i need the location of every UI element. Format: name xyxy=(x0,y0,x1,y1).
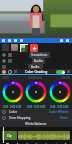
staticText: 0.00 xyxy=(16,105,22,109)
button[interactable]: Option xyxy=(66,39,69,42)
button[interactable]: Next frame xyxy=(43,143,49,144)
button[interactable]: Tool xyxy=(2,39,5,42)
button[interactable]: Undo xyxy=(4,143,10,144)
staticText: Color Grading xyxy=(25,69,48,74)
staticText: None xyxy=(60,116,69,120)
staticText: 0.00 xyxy=(50,105,56,109)
button[interactable]: Enable color grading xyxy=(56,70,65,74)
button[interactable]: Audio clip xyxy=(18,131,70,140)
button[interactable]: Selected clip xyxy=(20,44,28,52)
staticText: 0.00 xyxy=(40,105,46,109)
button[interactable]: Audio xyxy=(31,65,40,68)
button[interactable]: Video preview xyxy=(0,0,72,38)
staticText: Color xyxy=(9,110,18,114)
staticText: Transitions xyxy=(31,53,48,57)
button[interactable]: Tool xyxy=(20,39,23,42)
staticText: 0.00 xyxy=(34,105,40,109)
button[interactable]: Color wheel 1 xyxy=(2,81,24,103)
button[interactable]: Clip thumbnail xyxy=(11,44,18,51)
button[interactable]: Volume xyxy=(53,143,59,144)
button[interactable]: Tool xyxy=(14,39,17,42)
button[interactable]: Option xyxy=(60,39,63,42)
button[interactable]: Color wheel 3 xyxy=(49,81,71,103)
button[interactable]: Previous frame xyxy=(23,143,29,144)
button[interactable]: Tool xyxy=(8,39,11,42)
staticText: Audio xyxy=(31,65,40,68)
staticText: Tone Mapping xyxy=(9,116,31,120)
button[interactable]: Color Grading xyxy=(0,69,72,74)
staticText: Color Wheels xyxy=(49,110,69,114)
button[interactable]: Split xyxy=(14,143,20,144)
button[interactable]: Color wheel 2 xyxy=(25,81,47,103)
button[interactable]: Settings xyxy=(62,143,68,144)
button[interactable]: Tone Mapping xyxy=(0,115,72,121)
staticText: 0.00 xyxy=(3,105,9,109)
staticText: 0.00 xyxy=(10,105,16,109)
button[interactable]: Play xyxy=(33,143,39,144)
button[interactable]: Selected clip xyxy=(2,131,17,140)
staticText: Clip xyxy=(7,134,12,138)
staticText: Audio xyxy=(34,59,43,63)
button[interactable]: Color xyxy=(0,109,72,115)
staticText: 0.00 xyxy=(57,105,63,109)
button[interactable]: Add media xyxy=(30,44,38,52)
button[interactable]: Audio xyxy=(0,58,72,64)
staticText: 0.00 xyxy=(63,105,69,109)
staticText: White Balance xyxy=(25,122,47,126)
staticText: 0.00 xyxy=(27,105,33,109)
button[interactable]: Transitions xyxy=(0,52,72,58)
button[interactable]: White Balance xyxy=(0,121,72,127)
